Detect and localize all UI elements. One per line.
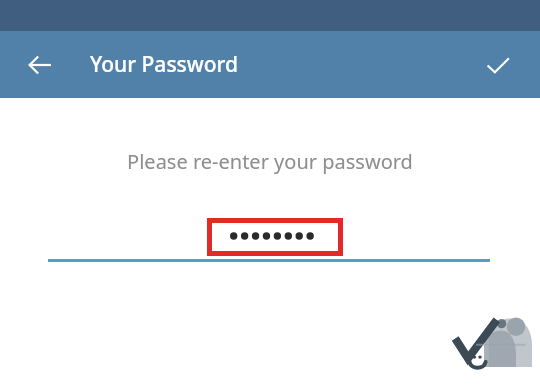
staticText: Please re-enter your password: [0, 148, 540, 175]
button[interactable]: Back: [12, 37, 68, 93]
button[interactable]: [48, 213, 490, 259]
button[interactable]: Confirm: [470, 37, 526, 93]
staticText: Your Password: [90, 50, 239, 79]
